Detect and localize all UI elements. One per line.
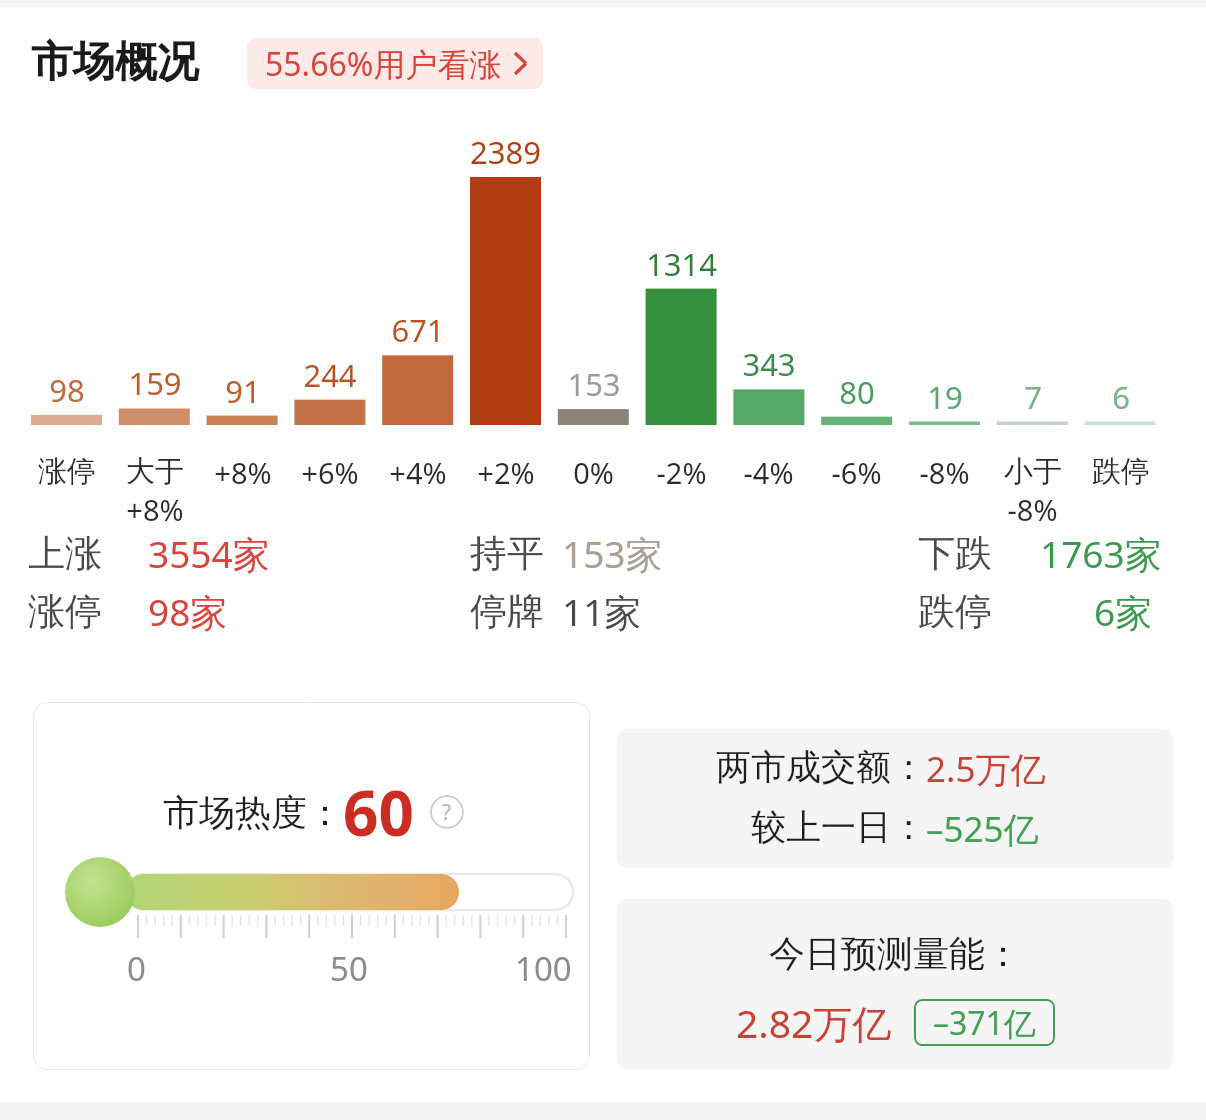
staticText: 244 [303,354,357,396]
staticText: 上涨 [28,530,102,577]
staticText: 跌停 [918,588,992,635]
staticText: 343 [742,343,796,385]
staticText: 55.66%用户看涨 [265,42,502,86]
staticText: 6 [1112,376,1130,418]
staticText: 两市成交额： [716,745,926,789]
staticText: 较上一日： [751,805,926,849]
staticText: 1763家 [1040,528,1162,579]
staticText: 50 [330,946,368,991]
staticText: 1314 [646,243,717,285]
staticText: 持平 [470,530,544,577]
button[interactable]: 停牌 [470,586,642,637]
staticText: 2.5万亿 [926,745,1046,793]
button[interactable]: 涨停 [28,586,228,637]
staticText: 大于 [126,453,184,490]
staticText: 6家 [1094,586,1153,637]
staticText: 100 [515,946,572,991]
staticText: 小于 [1004,453,1062,490]
staticText: 3554家 [148,528,270,579]
staticText: 60 [343,770,414,854]
staticText: 671 [391,309,445,351]
staticText: +8% [214,453,272,492]
staticText: 停牌 [470,588,544,635]
button[interactable]: 跌停 [918,586,1153,637]
staticText: -8% [919,453,970,492]
staticText: 涨停 [28,588,102,635]
button[interactable]: 热度说明 [430,795,464,829]
staticText: 11家 [562,586,642,637]
button[interactable]: 55.66%用户看涨 [247,38,543,89]
staticText: ? [442,798,452,827]
staticText: –371亿 [933,1001,1036,1045]
staticText: 80 [839,371,875,413]
staticText: 153 [567,363,621,405]
staticText: -8% [1007,490,1058,529]
staticText: +4% [389,453,447,492]
staticText: 市场概况 [31,36,199,89]
button[interactable] [33,702,590,1070]
button[interactable]: 上涨 [28,528,270,579]
staticText: 0% [573,453,614,492]
staticText: 市场热度： [163,790,343,835]
staticText: 下跌 [918,530,992,577]
staticText: 159 [128,362,182,404]
staticText: 涨停 [38,453,96,490]
staticText: –525亿 [926,805,1039,853]
staticText: -6% [831,453,882,492]
staticText: 153家 [562,528,663,579]
staticText: 19 [927,376,963,418]
staticText: -2% [656,453,707,492]
staticText: +8% [126,490,184,529]
staticText: 91 [225,370,261,412]
button[interactable]: 持平 [470,528,663,579]
button[interactable]: –371亿 [914,999,1055,1046]
staticText: +2% [477,453,535,492]
staticText: 2.82万亿 [736,996,892,1049]
staticText: 0 [127,946,146,991]
staticText: 7 [1024,376,1042,418]
button[interactable]: 两市成交额： [617,729,1173,868]
staticText: +6% [301,453,359,492]
button[interactable]: 下跌 [918,528,1162,579]
staticText: -4% [743,453,794,492]
staticText: 98家 [148,586,228,637]
staticText: 跌停 [1092,453,1150,490]
staticText: 2389 [470,131,541,173]
button[interactable]: 今日预测量能： [617,899,1173,1070]
staticText: 98 [49,369,85,411]
staticText: 今日预测量能： [769,931,1021,976]
